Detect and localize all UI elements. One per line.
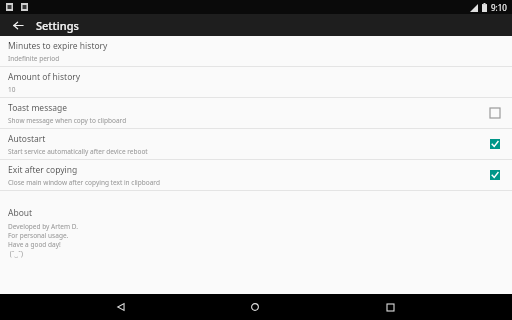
staticText: (ˆ‿ˆ) [8, 249, 23, 258]
staticText: Show message when copy to clipboard [8, 116, 127, 125]
button[interactable]: Autostart [0, 129, 512, 159]
staticText: Have a good day! [8, 240, 61, 249]
staticText: About [8, 207, 33, 219]
button[interactable]: Home [242, 294, 268, 320]
button[interactable]: Exit after copying [0, 160, 512, 190]
staticText: Amount of history [8, 71, 81, 83]
button[interactable]: Back [108, 294, 134, 320]
button[interactable]: Toast message [0, 98, 512, 128]
staticText: Minutes to expire history [8, 40, 108, 52]
button[interactable]: Unchecked [486, 104, 504, 122]
button[interactable]: Recent apps [377, 294, 403, 320]
button[interactable]: Back [8, 15, 28, 35]
staticText: Toast message [8, 102, 68, 114]
button[interactable]: Amount of history [0, 67, 512, 97]
staticText: Developed by Artem D. [8, 222, 78, 231]
staticText: Indefinite period [8, 54, 60, 63]
staticText: For personal usage. [8, 231, 69, 240]
button[interactable]: Minutes to expire history [0, 36, 512, 66]
staticText: Close main window after copying text in … [8, 178, 160, 187]
staticText: 9:10 [491, 2, 507, 13]
staticText: 10 [8, 85, 16, 94]
staticText: Start service automatically after device… [8, 147, 148, 156]
staticText: Autostart [8, 133, 46, 145]
button[interactable]: Checked [486, 135, 504, 153]
button[interactable]: Checked [486, 166, 504, 184]
button[interactable]: About [0, 191, 512, 266]
staticText: Exit after copying [8, 164, 78, 176]
staticText: Settings [36, 18, 79, 33]
